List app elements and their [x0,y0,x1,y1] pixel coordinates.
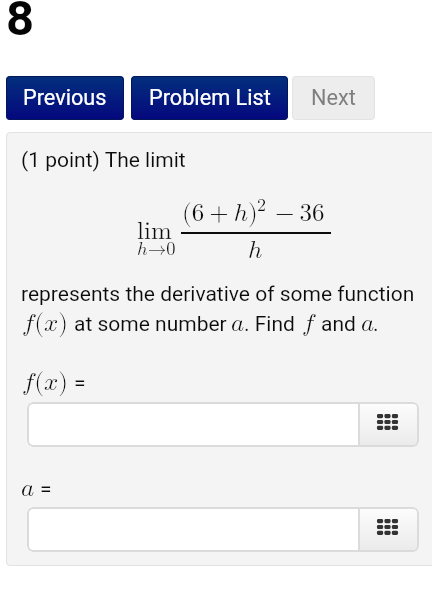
staticText: Previous [23,85,107,110]
staticText: (6 + ℎ) [182,201,258,226]
button[interactable]: Problem List [131,76,288,120]
staticText: − 36 [275,201,325,226]
staticText: . [373,312,379,337]
button[interactable]: Open math keypad [358,507,418,552]
staticText: 𝑓(𝑥) [22,370,69,395]
staticText: Problem List [149,85,271,110]
button[interactable]: Next [292,76,375,120]
button[interactable] [27,507,359,552]
staticText: = [74,371,86,396]
staticText: 𝑎 [361,311,375,336]
staticText: 2 [257,196,266,214]
staticText: lim [137,219,172,244]
staticText: ℎ [248,238,263,263]
staticText: = [40,477,52,502]
staticText: Next [311,85,356,110]
staticText: ℎ→0 [137,240,176,259]
staticText: represents the derivative of some functi… [21,282,415,307]
staticText: 𝑓(𝑥) [22,311,69,336]
staticText: 𝑎 [231,311,245,336]
staticText: at some number [74,312,227,337]
staticText: (1 point) The limit [21,148,186,173]
staticText: 8 [6,0,35,47]
staticText: . Find [244,312,295,337]
button[interactable] [27,402,359,447]
staticText: 𝑎 [21,476,35,501]
button[interactable]: Open math keypad [358,402,418,447]
button[interactable]: Previous [6,76,124,120]
staticText: and [321,312,356,337]
staticText: 𝑓 [302,311,315,336]
